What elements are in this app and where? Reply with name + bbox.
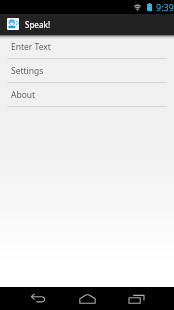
button[interactable]: Recent apps xyxy=(121,287,151,310)
button[interactable]: Enter Text xyxy=(0,35,174,59)
button[interactable]: Back xyxy=(23,287,53,310)
button[interactable]: Home xyxy=(72,287,102,310)
staticText: Settings xyxy=(11,65,44,77)
staticText: About xyxy=(11,89,36,101)
staticText: Enter Text xyxy=(11,41,51,53)
button[interactable]: Settings xyxy=(0,59,174,83)
staticText: 9:39 xyxy=(156,1,174,13)
button[interactable]: About xyxy=(0,83,174,107)
staticText: Speak! xyxy=(25,19,51,30)
